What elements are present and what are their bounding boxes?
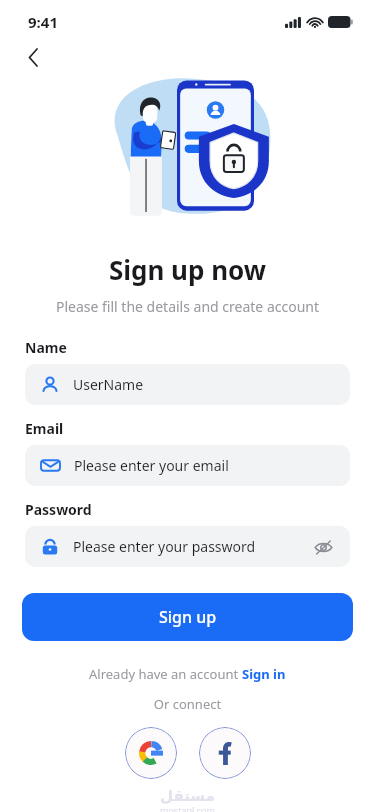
staticText: Please enter your password — [73, 537, 312, 556]
staticText: Email — [25, 419, 64, 438]
staticText: 9:41 — [28, 12, 58, 32]
button[interactable]: Please enter your email — [25, 445, 350, 486]
staticText: Password — [25, 500, 92, 519]
button[interactable]: Please enter your password — [25, 526, 350, 567]
staticText: Please fill the details and create accou… — [0, 297, 375, 316]
staticText: mostaql.com — [160, 804, 215, 812]
button[interactable]: Sign up with Google — [125, 727, 177, 779]
staticText: مستقل — [160, 787, 215, 804]
button[interactable]: Back — [20, 44, 46, 70]
staticText: Sign in — [242, 665, 286, 683]
button[interactable]: UserName — [25, 364, 350, 405]
staticText: Sign up now — [0, 252, 375, 287]
staticText: Name — [25, 338, 67, 357]
button[interactable]: Show password — [312, 536, 334, 558]
button[interactable]: Sign in — [242, 665, 286, 683]
staticText: Or connect — [0, 695, 375, 713]
staticText: Already have an account — [89, 665, 242, 683]
staticText: UserName — [73, 375, 334, 394]
staticText: Sign up — [159, 606, 217, 628]
button[interactable]: Sign up — [22, 593, 353, 641]
staticText: Please enter your email — [74, 456, 334, 475]
button[interactable]: Sign up with Facebook — [199, 727, 251, 779]
